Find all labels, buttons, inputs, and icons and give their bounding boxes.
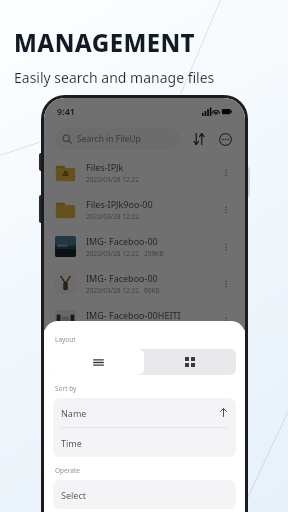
staticText: Layout <box>55 335 76 344</box>
button[interactable]: Item menu <box>218 313 234 329</box>
staticText: Select <box>61 489 86 501</box>
button[interactable]: Item menu <box>218 165 234 181</box>
staticText: 2022/03/28 12:22 209KB <box>86 249 164 258</box>
staticText: Sort by <box>55 384 77 393</box>
button[interactable]: Name <box>53 398 236 427</box>
button[interactable]: More options <box>216 130 234 148</box>
staticText: Search in FileUp <box>77 133 141 145</box>
staticText: MANAGEMENT <box>14 26 195 59</box>
button[interactable]: Item menu <box>218 202 234 218</box>
staticText: 9:41 <box>57 105 75 117</box>
button[interactable]: Search in FileUp <box>55 128 180 150</box>
staticText: IMG- Faceboo-00HEITI <box>86 309 181 321</box>
button[interactable]: Files-IPJk <box>44 154 245 191</box>
staticText: Files-IPJk <box>86 161 124 173</box>
staticText: Easily search and manage files <box>14 68 215 87</box>
button[interactable]: IMG- Faceboo-00 <box>44 265 245 302</box>
staticText: Operate <box>55 466 80 475</box>
button[interactable]: Files-IPJk9oo-00 <box>44 191 245 228</box>
staticText: IMG- Faceboo-00 <box>86 272 158 284</box>
button[interactable]: Grid layout <box>144 349 236 375</box>
button[interactable]: Time <box>53 428 236 457</box>
button[interactable]: IMG- Faceboo-00 <box>44 228 245 265</box>
button[interactable]: Item menu <box>218 239 234 255</box>
staticText: 2022/03/28 12:22 <box>86 175 139 184</box>
button[interactable]: List layout <box>53 349 144 375</box>
button[interactable]: IMG- Faceboo-00HEITI <box>44 302 245 339</box>
staticText: 2022/03/28 12:22 <box>86 212 139 221</box>
staticText: 2022/03/28 12:22 60KB <box>86 286 160 295</box>
staticText: Name <box>61 407 87 419</box>
staticText: Time <box>61 437 82 449</box>
button[interactable]: Select <box>53 480 236 509</box>
staticText: Files-IPJk9oo-00 <box>86 198 153 210</box>
button[interactable]: Item menu <box>218 276 234 292</box>
button[interactable]: Sort <box>190 130 208 148</box>
staticText: IMG- Faceboo-00 <box>86 235 158 247</box>
